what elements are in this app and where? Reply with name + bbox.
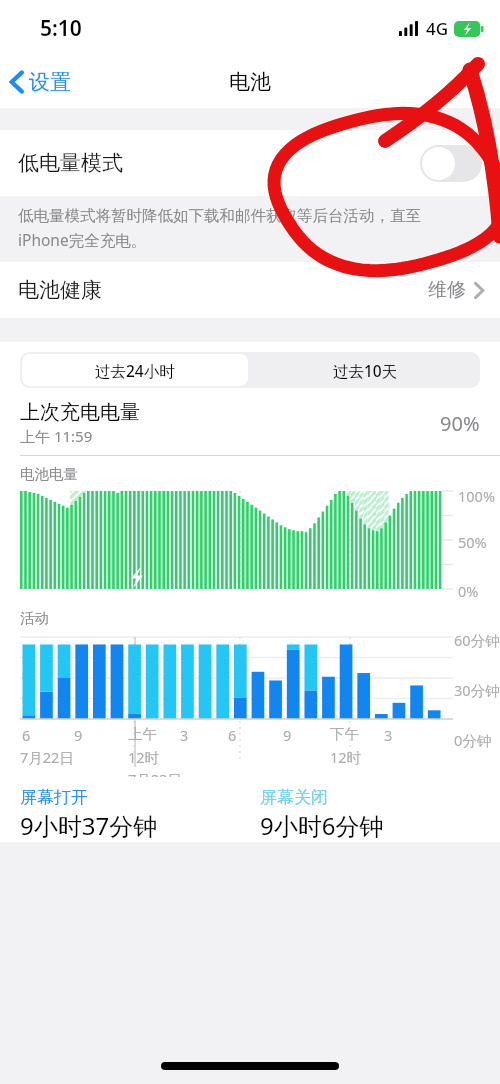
staticText: 6 [22, 725, 31, 745]
staticText: 3 [180, 725, 189, 745]
staticText: 9 [74, 725, 83, 745]
staticText: 屏幕关闭 [260, 787, 328, 808]
staticText: 12时 [330, 747, 362, 767]
staticText: 30分钟 [454, 680, 500, 700]
staticText: 0% [458, 581, 479, 601]
button[interactable]: 过去24小时 [22, 354, 248, 386]
staticText: 12时 [128, 747, 160, 767]
button[interactable]: 低电量模式 [0, 130, 500, 196]
button[interactable]: 过去10天 [250, 352, 480, 388]
staticText: 3 [384, 725, 393, 745]
staticText: 9小时6分钟 [260, 809, 384, 842]
staticText: 维修 [428, 278, 466, 302]
staticText: 过去24小时 [95, 360, 175, 381]
staticText: 5:10 [40, 14, 82, 43]
staticText: 9小时37分钟 [20, 809, 158, 842]
staticText: 上午 [128, 725, 157, 743]
staticText: 60分钟 [454, 630, 500, 650]
staticText: 电池电量 [20, 465, 78, 483]
staticText: 活动 [20, 609, 49, 627]
staticText: 屏幕打开 [20, 787, 88, 808]
staticText: iPhone完全充电。 [18, 229, 147, 250]
staticText: 电池健康 [18, 277, 102, 303]
staticText: 电池 [229, 69, 271, 95]
button[interactable]: 设置 [0, 63, 83, 101]
staticText: 90% [440, 410, 480, 437]
staticText: 低电量模式将暂时降低如下载和邮件获取等后台活动，直至 [18, 206, 421, 226]
staticText: 7月22日 [20, 747, 74, 767]
staticText: 过去10天 [333, 360, 398, 381]
staticText: 设置 [29, 69, 71, 95]
staticText: 6 [228, 725, 237, 745]
staticText: 7月23日 [128, 769, 182, 777]
staticText: 9 [283, 725, 292, 745]
staticText: 0分钟 [454, 730, 492, 750]
staticText: 4G [426, 17, 449, 40]
button[interactable]: 低电量模式开关 [420, 145, 482, 182]
staticText: 50% [458, 532, 487, 552]
button[interactable]: 电池健康 [0, 262, 500, 318]
staticText: 上次充电电量 [20, 400, 140, 425]
staticText: 上午 11:59 [20, 426, 93, 446]
staticText: 100% [458, 486, 495, 506]
staticText: 下午 [330, 725, 359, 743]
staticText: 低电量模式 [18, 150, 123, 176]
